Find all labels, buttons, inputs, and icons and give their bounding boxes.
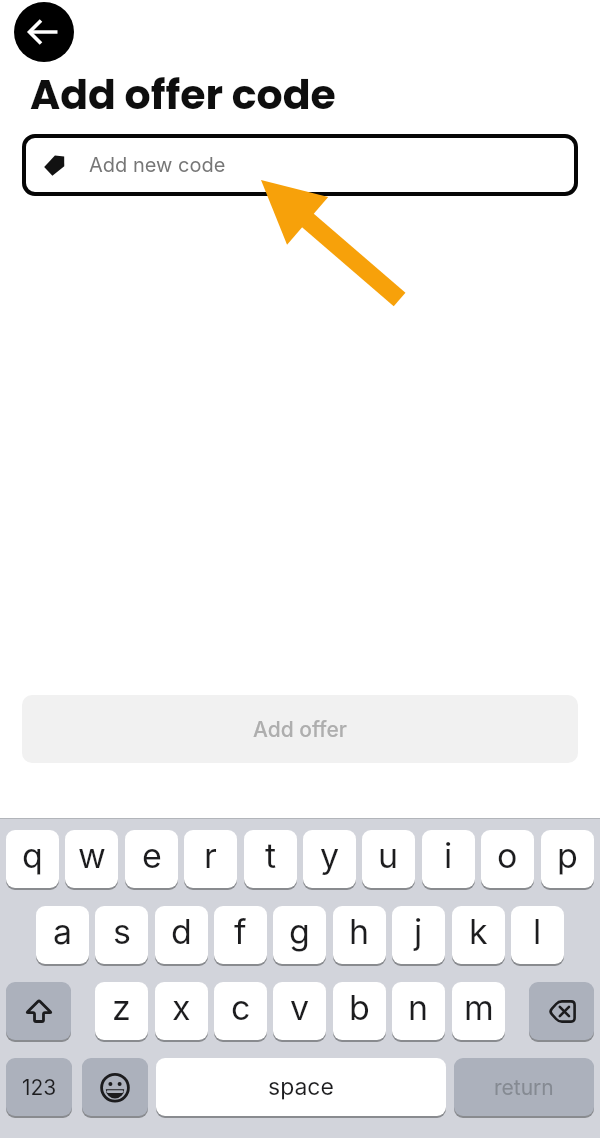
button[interactable]: q	[6, 830, 59, 888]
button[interactable]: l	[511, 906, 564, 964]
button[interactable]: r	[184, 830, 237, 888]
button[interactable]: space	[156, 1058, 446, 1116]
staticText: n	[408, 987, 429, 1028]
staticText: b	[349, 987, 370, 1028]
button[interactable]	[6, 982, 71, 1040]
button[interactable]	[82, 1058, 148, 1116]
staticText: q	[22, 835, 43, 876]
button[interactable]	[529, 982, 594, 1040]
staticText: r	[204, 835, 217, 876]
button[interactable]: v	[273, 982, 326, 1040]
button[interactable]: k	[452, 906, 505, 964]
button[interactable]: i	[422, 830, 475, 888]
button[interactable]: m	[452, 982, 505, 1040]
button[interactable]: t	[244, 830, 297, 888]
button[interactable]: Add new code	[22, 134, 578, 196]
staticText: t	[265, 835, 277, 876]
button[interactable]: n	[392, 982, 445, 1040]
staticText: Add offer	[253, 717, 347, 742]
staticText: return	[494, 1075, 554, 1100]
staticText: j	[414, 911, 423, 952]
staticText: h	[349, 911, 370, 952]
button[interactable]: b	[333, 982, 386, 1040]
staticText: 123	[22, 1075, 57, 1100]
button[interactable]	[14, 2, 74, 62]
button[interactable]: e	[125, 830, 178, 888]
staticText: c	[231, 987, 251, 1028]
button[interactable]: Add offer	[22, 695, 578, 763]
staticText: x	[172, 987, 191, 1028]
staticText: v	[290, 987, 310, 1028]
staticText: i	[444, 835, 453, 876]
button[interactable]: c	[214, 982, 267, 1040]
button[interactable]: w	[65, 830, 118, 888]
button[interactable]: f	[214, 906, 267, 964]
button[interactable]: j	[392, 906, 445, 964]
staticText: Add new code	[89, 153, 226, 177]
button[interactable]: a	[36, 906, 89, 964]
button[interactable]: g	[273, 906, 326, 964]
staticText: p	[557, 835, 578, 876]
button[interactable]: p	[541, 830, 594, 888]
staticText: s	[113, 911, 131, 952]
button[interactable]: u	[362, 830, 415, 888]
staticText: k	[469, 911, 488, 952]
staticText: m	[464, 987, 494, 1028]
staticText: g	[289, 911, 310, 952]
button[interactable]: 123	[6, 1058, 72, 1116]
staticText: l	[533, 911, 542, 952]
button[interactable]: h	[333, 906, 386, 964]
button[interactable]: z	[95, 982, 148, 1040]
button[interactable]: y	[303, 830, 356, 888]
staticText: space	[268, 1073, 334, 1101]
staticText: z	[112, 987, 131, 1028]
staticText: w	[78, 835, 106, 876]
staticText: a	[53, 911, 73, 952]
staticText: o	[497, 835, 518, 876]
button[interactable]: s	[95, 906, 148, 964]
staticText: e	[142, 835, 162, 876]
button[interactable]: return	[454, 1058, 594, 1116]
staticText: u	[378, 835, 399, 876]
staticText: d	[171, 911, 192, 952]
staticText: Add offer code	[30, 66, 336, 123]
button[interactable]: o	[481, 830, 534, 888]
button[interactable]: x	[155, 982, 208, 1040]
button[interactable]: d	[155, 906, 208, 964]
staticText: y	[320, 835, 340, 876]
staticText: f	[234, 911, 247, 952]
